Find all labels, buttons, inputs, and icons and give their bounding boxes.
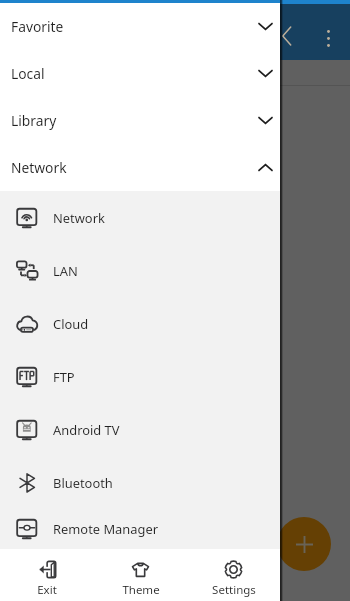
staticText: LAN — [53, 262, 78, 280]
button[interactable]: Bluetooth — [0, 456, 280, 509]
staticText: Network — [11, 158, 67, 177]
button[interactable]: Cloud — [0, 297, 280, 350]
staticText: Cloud — [53, 315, 89, 333]
button[interactable]: Add — [277, 517, 331, 571]
button[interactable]: Android TV — [0, 403, 280, 456]
staticText: Library — [11, 111, 57, 130]
staticText: Network — [53, 209, 105, 227]
button[interactable]: Back — [268, 19, 302, 53]
button[interactable]: Favorite — [0, 3, 280, 50]
button[interactable]: Exit — [0, 549, 94, 598]
button[interactable]: LAN — [0, 244, 280, 297]
staticText: Local — [11, 64, 45, 83]
button[interactable]: Remote Manager — [0, 509, 280, 549]
staticText: Android TV — [53, 421, 120, 439]
staticText: Remote Manager — [53, 520, 159, 538]
staticText: FTP — [53, 368, 75, 386]
staticText: Favorite — [11, 17, 64, 36]
button[interactable]: FTP — [0, 350, 280, 403]
button[interactable]: Network — [0, 144, 280, 191]
button[interactable]: Settings — [187, 549, 280, 598]
staticText: Bluetooth — [53, 474, 113, 492]
button[interactable]: More options — [311, 21, 345, 55]
button[interactable]: Theme — [94, 549, 187, 598]
staticText: Settings — [212, 582, 256, 598]
button[interactable]: Network — [0, 191, 280, 244]
staticText: Theme — [122, 582, 160, 598]
button[interactable]: Local — [0, 50, 280, 97]
button[interactable]: Library — [0, 97, 280, 144]
staticText: Exit — [37, 582, 57, 598]
